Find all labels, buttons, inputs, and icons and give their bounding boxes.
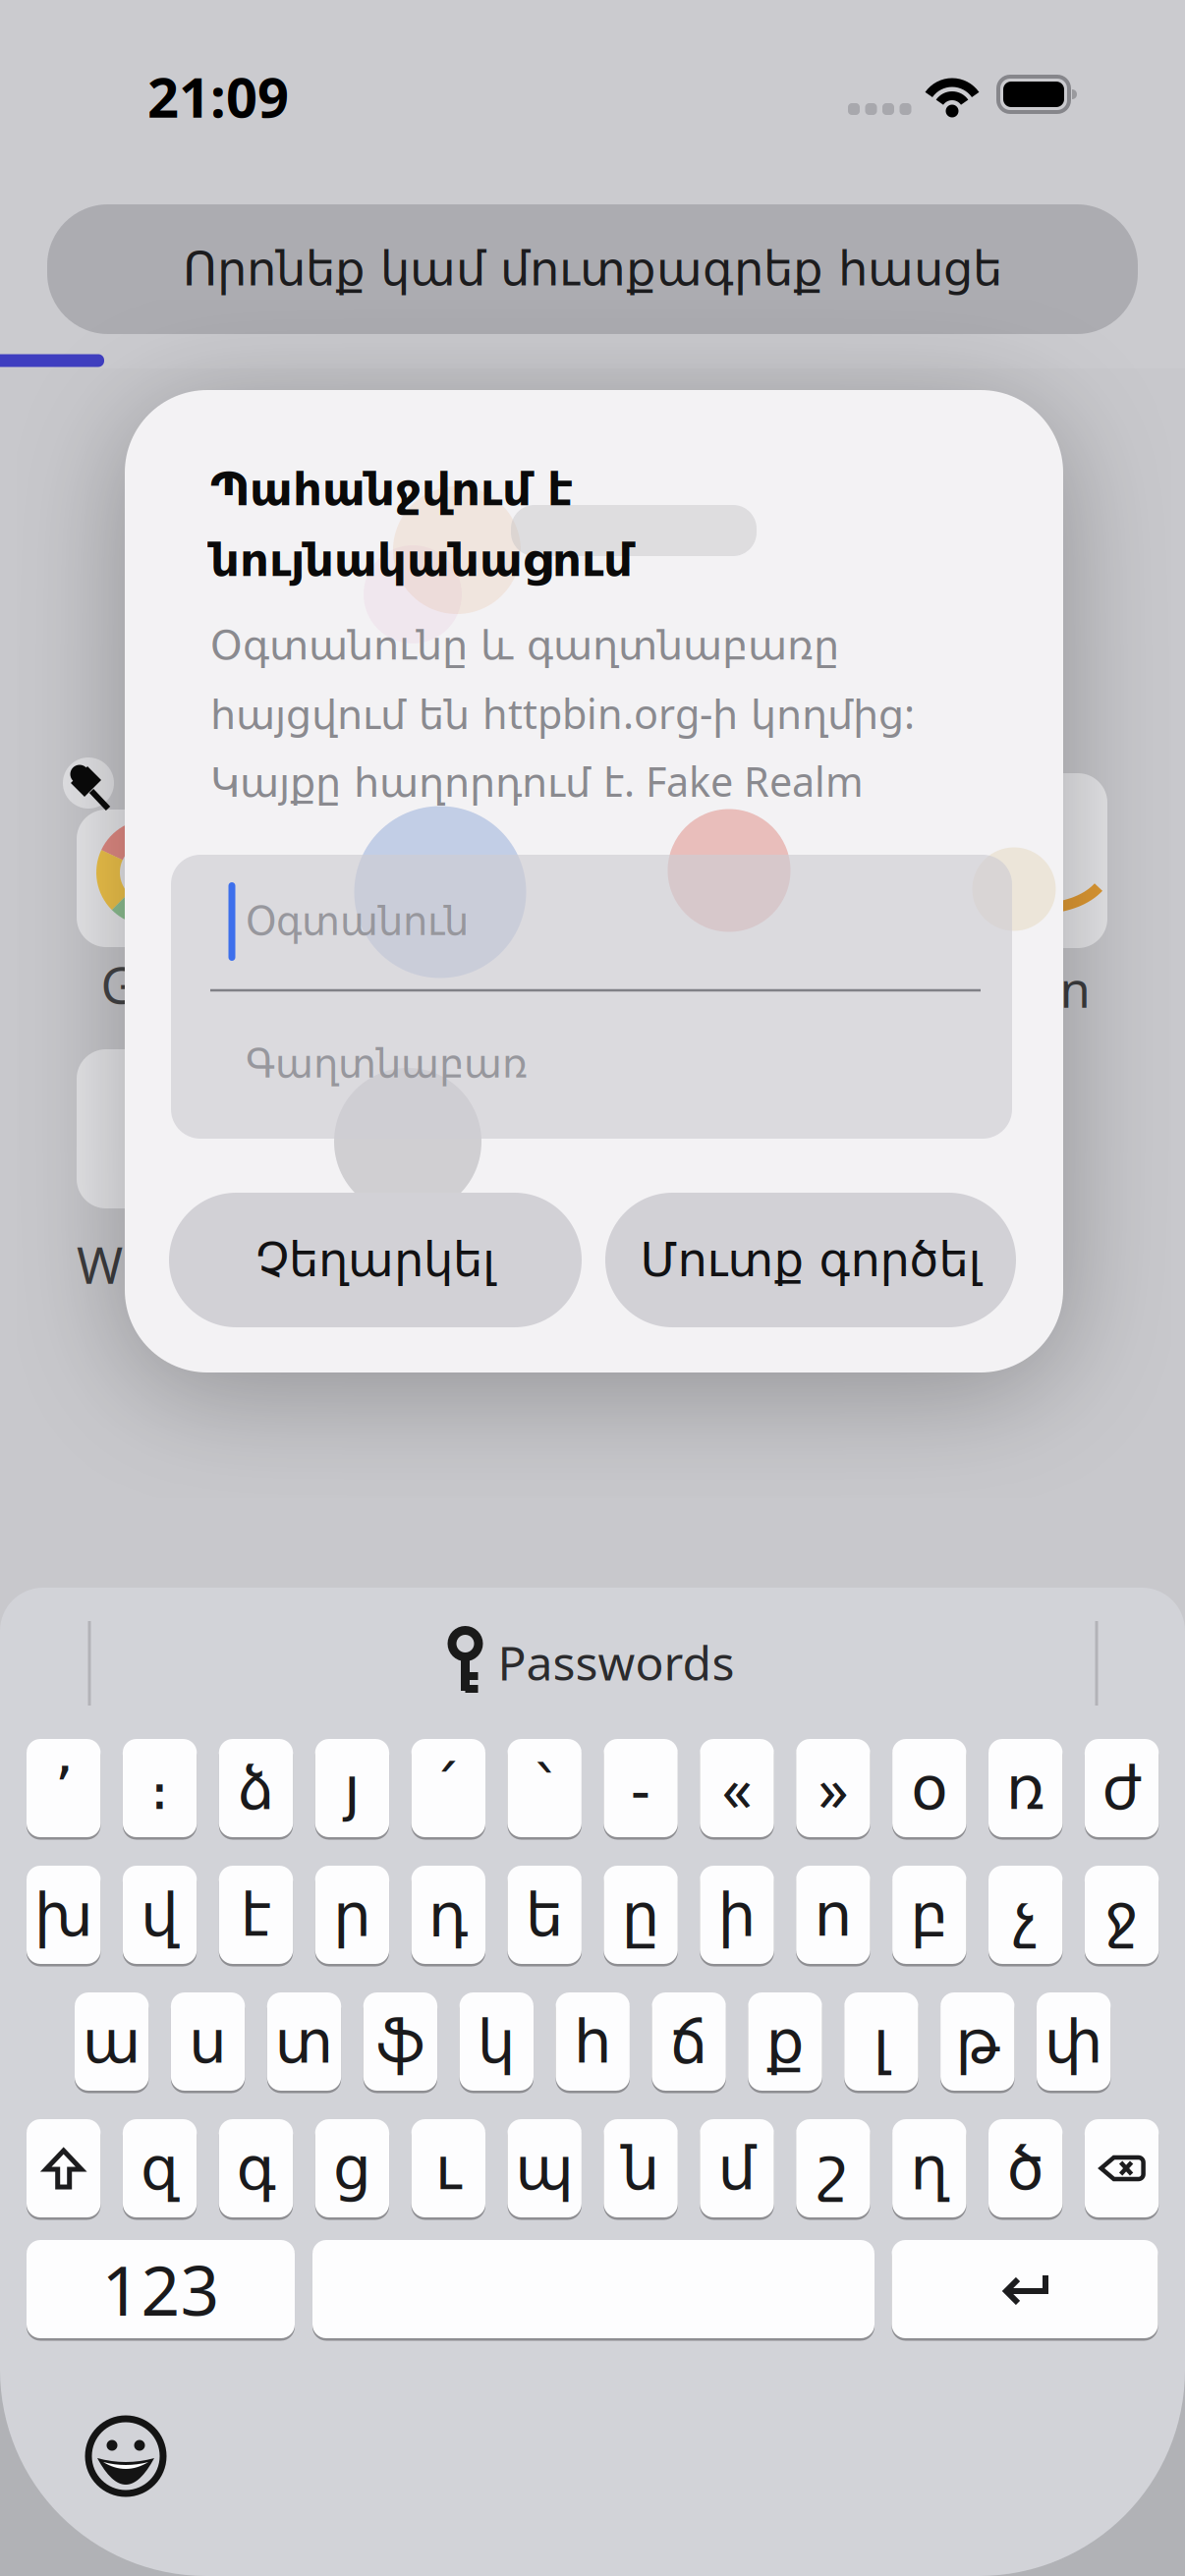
button[interactable]: Passwords: [451, 1630, 734, 1695]
staticText: յ: [344, 1754, 361, 1822]
button[interactable]: է: [219, 1866, 293, 1964]
button[interactable]: ռ: [988, 1739, 1063, 1837]
button[interactable]: ն: [604, 2119, 678, 2217]
button[interactable]: լ: [844, 1992, 918, 2091]
staticText: ՚: [54, 1754, 73, 1822]
button[interactable]: ջ: [1085, 1866, 1159, 1964]
button[interactable]: ժ: [1085, 1739, 1159, 1837]
button[interactable]: Delete: [1085, 2119, 1159, 2217]
button[interactable]: 123: [27, 2240, 295, 2338]
button[interactable]: ւ: [411, 2119, 485, 2217]
button[interactable]: դ: [411, 1866, 485, 1964]
button[interactable]: ր: [315, 1866, 389, 1964]
staticText: է: [240, 1881, 272, 1949]
staticText: »: [818, 1748, 848, 1828]
staticText: ց: [333, 2134, 371, 2202]
button[interactable]: շ: [796, 2119, 870, 2217]
staticText: 21:09: [147, 60, 289, 133]
staticText: «: [722, 1748, 752, 1828]
staticText: թ: [955, 2007, 1000, 2076]
staticText: Օգտանունը և գաղտնաբառը: [210, 622, 839, 668]
staticText: բ: [910, 1881, 948, 1949]
staticText: ղ: [910, 2134, 948, 2202]
button[interactable]: ե: [508, 1866, 582, 1964]
button[interactable]: Գաղտնաբառ: [171, 995, 1012, 1133]
button[interactable]: ո: [796, 1866, 870, 1964]
staticText: մ: [718, 2134, 756, 2202]
button[interactable]: զ: [123, 2119, 197, 2217]
staticText: կ: [477, 2007, 516, 2076]
button[interactable]: Shift: [27, 2119, 101, 2217]
staticText: ի: [718, 1881, 756, 1949]
button[interactable]: կ: [459, 1992, 534, 2091]
button[interactable]: ՚: [27, 1739, 101, 1837]
staticText: ՝: [537, 1754, 552, 1822]
button[interactable]: Չեղարկել: [169, 1193, 582, 1327]
button[interactable]: Մուտք գործել: [605, 1193, 1016, 1327]
staticText: օ: [911, 1754, 948, 1822]
staticText: ժ: [1102, 1754, 1141, 1822]
button[interactable]: Որոնեք կամ մուտքագրեք հասցե: [47, 204, 1138, 334]
staticText: ւ: [435, 2134, 462, 2202]
staticText: ծ: [1007, 2134, 1044, 2202]
button[interactable]: մ: [700, 2119, 774, 2217]
button[interactable]: ղ: [892, 2119, 966, 2217]
staticText: -: [631, 1748, 651, 1828]
button[interactable]: հ: [556, 1992, 630, 2091]
button[interactable]: գ: [219, 2119, 293, 2217]
staticText: Passwords: [498, 1631, 734, 1694]
staticText: ը: [622, 1881, 660, 1949]
button[interactable]: փ: [1037, 1992, 1111, 2091]
button[interactable]: տ: [267, 1992, 341, 2091]
button[interactable]: ձ: [219, 1739, 293, 1837]
staticText: ս: [189, 2007, 227, 2076]
staticText: տ: [275, 2007, 334, 2076]
staticText: չ: [1013, 1881, 1038, 1949]
staticText: լ: [873, 2007, 890, 2076]
button[interactable]: խ: [27, 1866, 101, 1964]
button[interactable]: ա: [75, 1992, 149, 2091]
staticText: վ: [141, 1881, 179, 1949]
staticText: հ: [574, 2007, 612, 2076]
staticText: պ: [515, 2134, 574, 2202]
button[interactable]: Space: [312, 2240, 875, 2338]
staticText: Գաղտնաբառ: [246, 1042, 528, 1086]
staticText: ն: [622, 2134, 660, 2202]
staticText: ք: [766, 2007, 804, 2076]
button[interactable]: օ: [892, 1739, 966, 1837]
staticText: Որոնեք կամ մուտքագրեք հասցե: [183, 242, 1002, 296]
button[interactable]: Emoji: [86, 2417, 165, 2495]
staticText: n: [1060, 955, 1090, 1021]
staticText: ճ: [670, 2007, 708, 2076]
button[interactable]: չ: [988, 1866, 1063, 1964]
button[interactable]: ճ: [652, 1992, 726, 2091]
staticText: ո: [814, 1881, 852, 1949]
button[interactable]: բ: [892, 1866, 966, 1964]
staticText: G: [101, 951, 137, 1018]
button[interactable]: -: [604, 1739, 678, 1837]
button[interactable]: ք: [748, 1992, 822, 2091]
button[interactable]: ս: [171, 1992, 245, 2091]
staticText: Կայքը հաղորդում է. Fake Realm: [210, 754, 864, 808]
button[interactable]: ծ: [988, 2119, 1063, 2217]
button[interactable]: Return: [892, 2240, 1158, 2338]
button[interactable]: ց: [315, 2119, 389, 2217]
button[interactable]: ֆ: [363, 1992, 437, 2091]
button[interactable]: «: [700, 1739, 774, 1837]
button[interactable]: ՛: [411, 1739, 485, 1837]
button[interactable]: ը: [604, 1866, 678, 1964]
button[interactable]: »: [796, 1739, 870, 1837]
button[interactable]: թ: [940, 1992, 1015, 2091]
button[interactable]: ՝: [508, 1739, 582, 1837]
staticText: փ: [1044, 2007, 1103, 2076]
staticText: ե: [525, 1881, 564, 1949]
button[interactable]: պ: [508, 2119, 582, 2217]
staticText: նույնականացում: [210, 534, 633, 586]
button[interactable]: ։: [123, 1739, 197, 1837]
button[interactable]: ի: [700, 1866, 774, 1964]
button[interactable]: յ: [315, 1739, 389, 1837]
staticText: ձ: [238, 1754, 274, 1822]
staticText: Մուտք գործել: [640, 1233, 981, 1287]
button[interactable]: Օգտանուն: [171, 853, 1012, 990]
button[interactable]: վ: [123, 1866, 197, 1964]
